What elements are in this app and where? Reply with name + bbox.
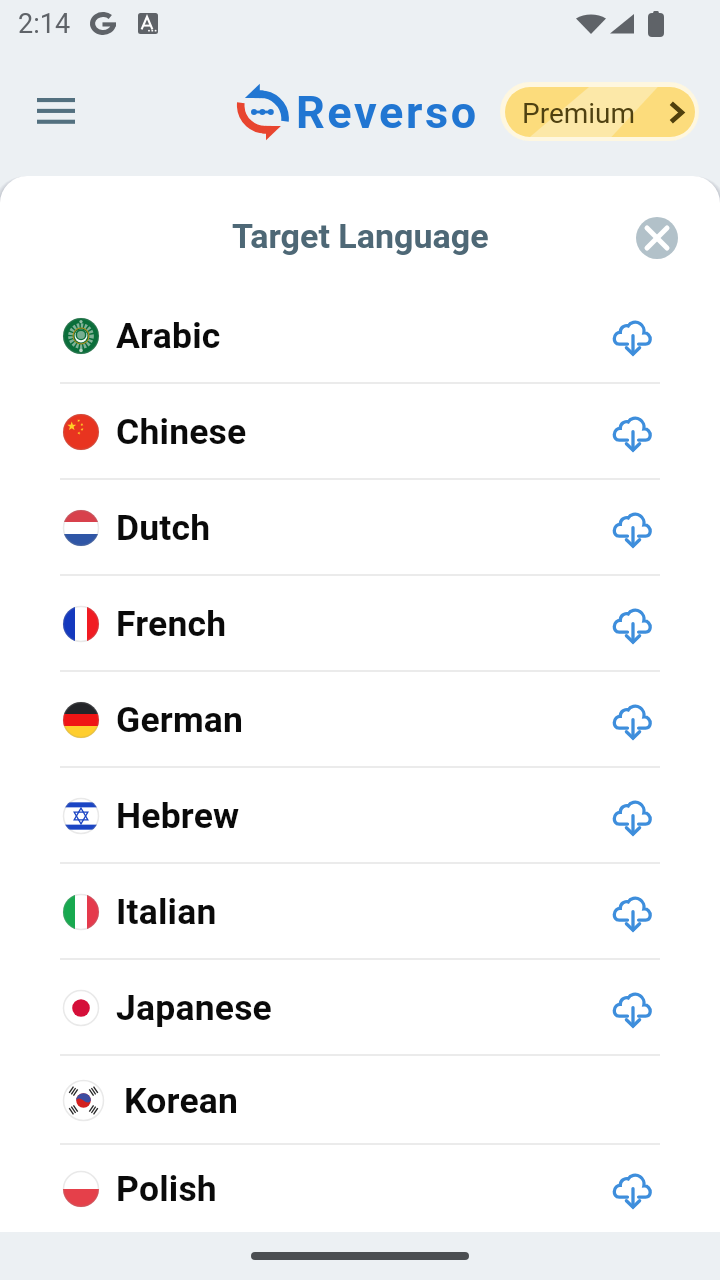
button[interactable]: Korean <box>0 1056 720 1145</box>
staticText: Japanese <box>116 987 273 1029</box>
button[interactable]: French <box>0 576 720 672</box>
staticText: French <box>116 603 227 645</box>
staticText: Korean <box>124 1080 239 1122</box>
button[interactable]: Polish <box>0 1145 720 1232</box>
button[interactable]: Premium <box>500 82 699 141</box>
staticText: Hebrew <box>116 795 240 837</box>
staticText: Arabic <box>116 315 221 357</box>
staticText: Target Language <box>232 216 489 256</box>
button[interactable]: Hebrew <box>0 768 720 864</box>
staticText: 2:14 <box>18 8 71 40</box>
button[interactable]: Chinese <box>0 384 720 480</box>
staticText: Reverso <box>296 86 479 139</box>
button[interactable]: Japanese <box>0 960 720 1056</box>
button[interactable]: German <box>0 672 720 768</box>
staticText: Chinese <box>116 411 247 453</box>
button[interactable]: Arabic <box>0 288 720 384</box>
staticText: Italian <box>116 891 217 933</box>
staticText: Premium <box>522 97 636 130</box>
button[interactable]: Close <box>636 217 678 259</box>
button[interactable]: Italian <box>0 864 720 960</box>
button[interactable]: Dutch <box>0 480 720 576</box>
staticText: German <box>116 699 244 741</box>
button[interactable]: Menu <box>13 68 99 154</box>
staticText: Dutch <box>116 507 211 549</box>
staticText: Polish <box>116 1168 217 1210</box>
